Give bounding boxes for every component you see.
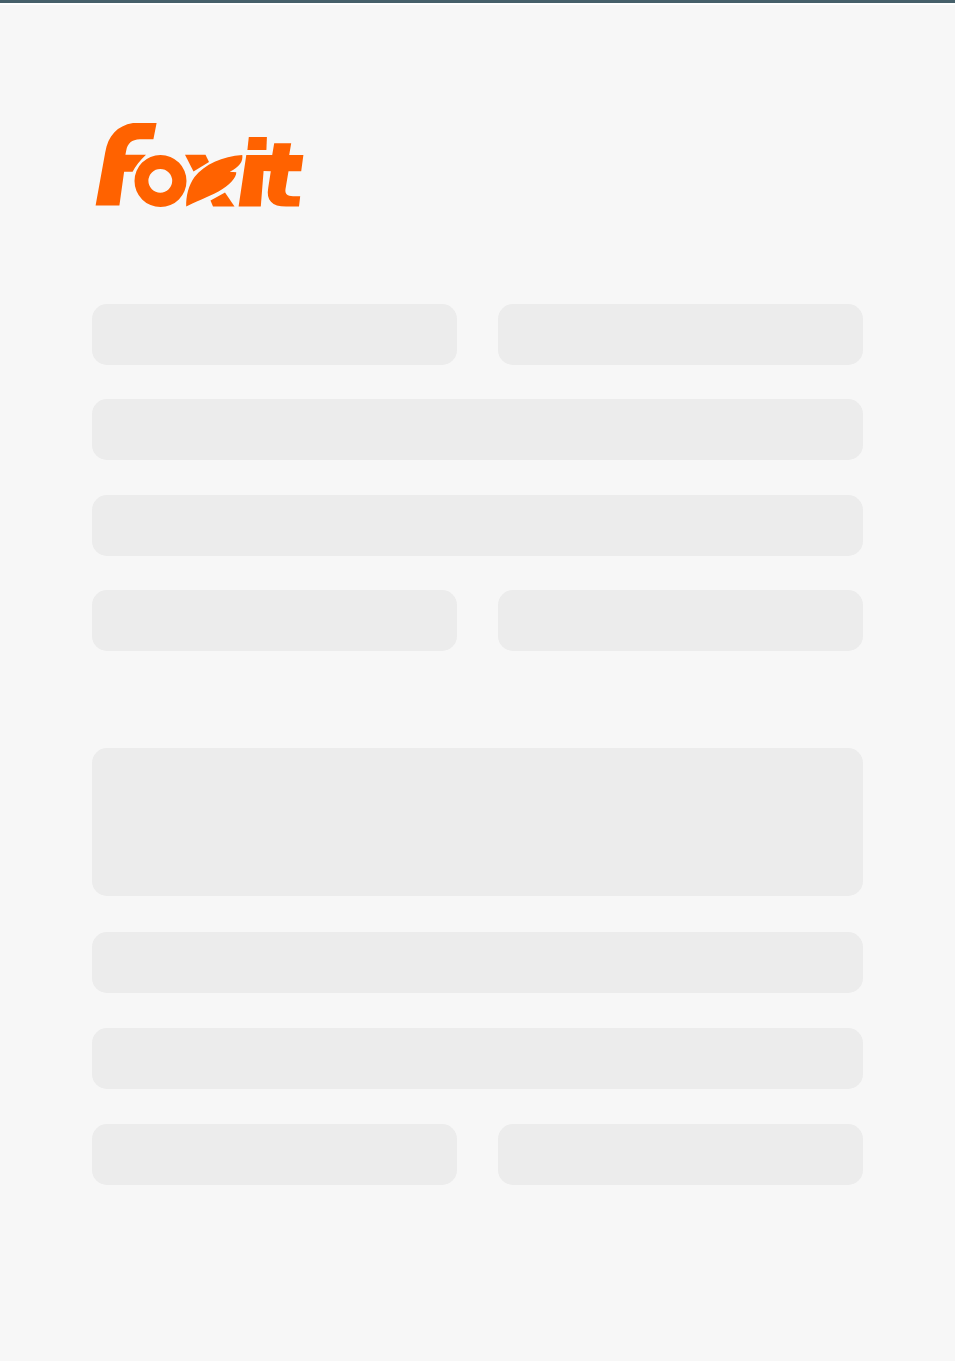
other: Foxit	[95, 122, 303, 208]
